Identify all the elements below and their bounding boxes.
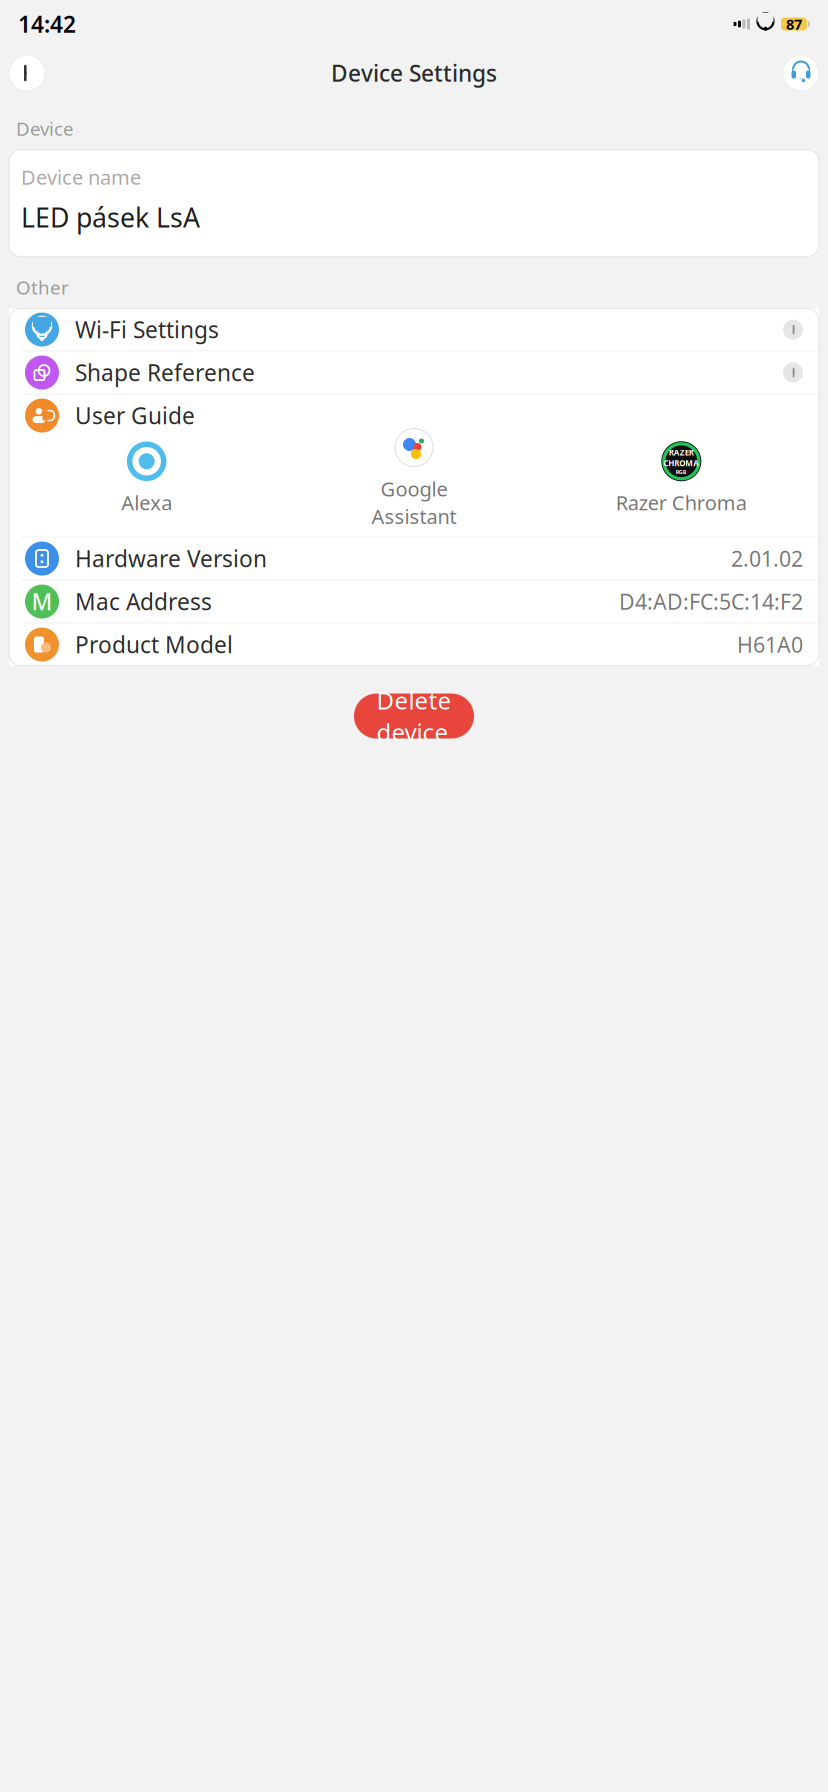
button[interactable]: Alexa <box>13 443 280 523</box>
button[interactable]: Back <box>9 55 45 91</box>
staticText: 87 <box>786 14 802 34</box>
staticText: Product Model <box>75 629 233 660</box>
staticText: 2.01.02 <box>731 544 803 573</box>
button[interactable]: Google <box>280 443 548 523</box>
button[interactable]: Delete device <box>354 694 474 739</box>
staticText: LED pásek LsA <box>21 199 200 235</box>
staticText: H61A0 <box>737 630 803 659</box>
staticText: Hardware Version <box>75 543 267 574</box>
button[interactable]: Device name <box>0 150 828 257</box>
staticText: Mac Address <box>75 586 212 617</box>
staticText: D4:AD:FC:5C:14:F2 <box>619 587 803 616</box>
staticText: Assistant <box>371 503 456 530</box>
staticText: Google <box>380 475 447 502</box>
staticText: Razer Chroma <box>616 489 747 516</box>
staticText: Alexa <box>121 489 172 516</box>
staticText: User Guide <box>75 400 195 431</box>
staticText: CHROMA <box>663 458 699 468</box>
button[interactable]: Customer Support <box>783 55 819 91</box>
staticText: Shape Reference <box>75 357 255 388</box>
staticText: M <box>31 586 52 617</box>
staticText: Device Settings <box>331 58 497 88</box>
button[interactable]: Product Model <box>9 624 819 666</box>
staticText: Delete device <box>376 684 451 748</box>
button[interactable]: Hardware Version <box>9 538 819 580</box>
button[interactable]: Shape Reference <box>9 352 819 394</box>
button[interactable]: RAZER <box>548 443 815 523</box>
staticText: Wi-Fi Settings <box>75 314 219 345</box>
staticText: Device name <box>21 164 141 190</box>
button[interactable]: Wi-Fi Settings <box>9 309 819 351</box>
button[interactable]: M <box>9 581 819 623</box>
staticText: RAZER <box>669 447 694 458</box>
staticText: RGB <box>676 468 687 475</box>
staticText: Device <box>16 116 74 141</box>
button[interactable]: User Guide <box>9 395 819 437</box>
staticText: 14:42 <box>18 9 76 39</box>
staticText: Other <box>16 275 69 300</box>
